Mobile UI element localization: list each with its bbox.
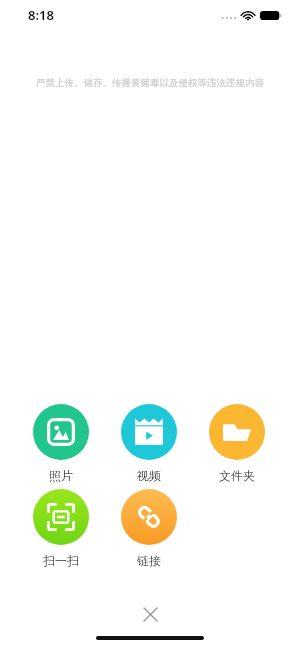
staticText: 链接 <box>121 553 177 568</box>
staticText: 视频 <box>121 468 177 483</box>
staticText: 扫一扫 <box>33 553 89 568</box>
button[interactable]: 视频 <box>121 404 177 483</box>
staticText: 严禁上传、储存、传播黄赌毒以及侵权等违法违规内容 <box>0 77 300 89</box>
staticText: 文件夹 <box>209 468 265 483</box>
staticText: 8:18 <box>28 6 54 24</box>
button[interactable]: 链接 <box>121 489 177 568</box>
button[interactable]: Close <box>137 601 163 627</box>
button[interactable]: 扫一扫 <box>33 489 89 568</box>
button[interactable]: 照片 <box>33 404 89 483</box>
staticText: 照片 <box>33 468 89 483</box>
button[interactable]: 文件夹 <box>209 404 265 483</box>
